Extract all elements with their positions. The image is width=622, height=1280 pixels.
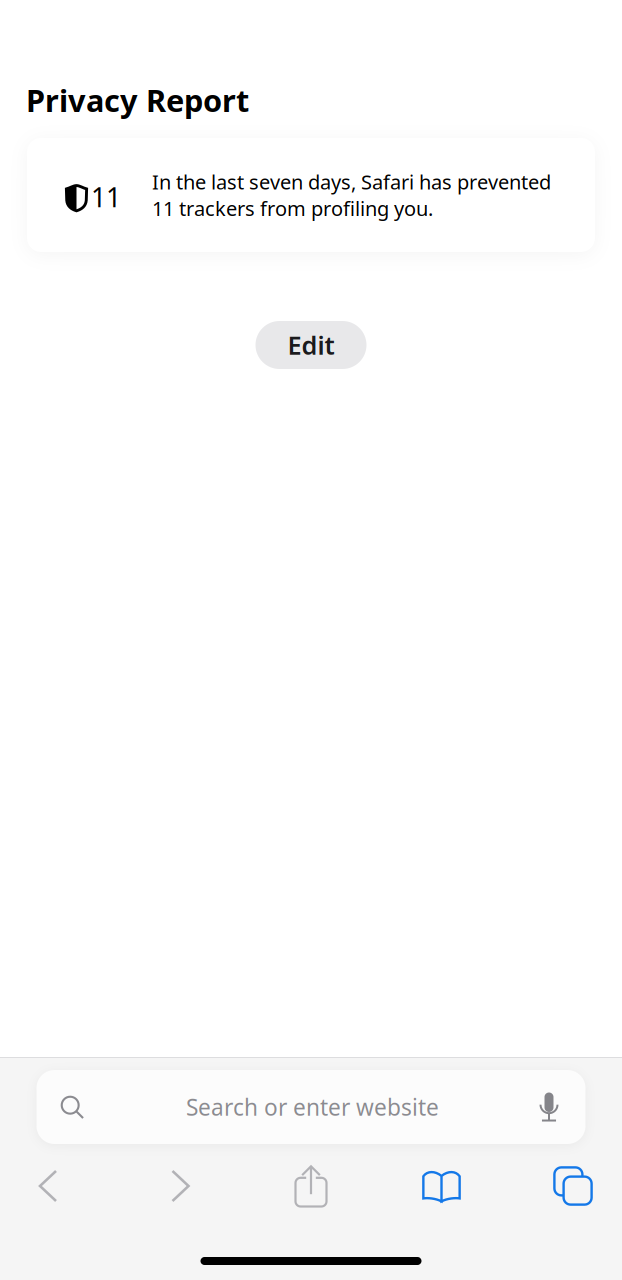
- staticText: In the last seven days, Safari has preve…: [152, 168, 551, 221]
- button[interactable]: Share: [276, 1155, 346, 1217]
- staticText: Search or enter website: [186, 1092, 439, 1122]
- staticText: Edit: [287, 328, 334, 362]
- button[interactable]: Voice Search: [522, 1080, 576, 1134]
- button[interactable]: Back: [13, 1155, 83, 1217]
- button[interactable]: Bookmarks: [406, 1155, 476, 1217]
- button[interactable]: Search or enter website: [36, 1070, 585, 1144]
- button[interactable]: Tabs: [538, 1155, 608, 1217]
- staticText: Privacy Report: [26, 80, 249, 120]
- button[interactable]: Forward: [145, 1155, 215, 1217]
- staticText: 11: [91, 179, 121, 215]
- button[interactable]: Edit: [255, 321, 366, 369]
